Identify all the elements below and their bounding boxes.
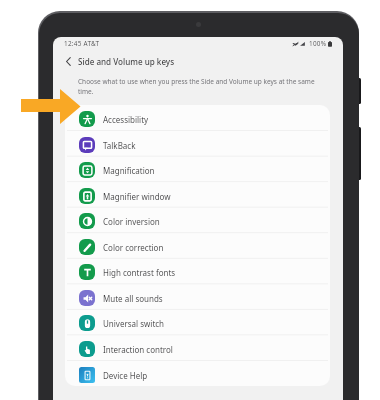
staticText: Interaction control — [103, 344, 173, 355]
staticText: Universal switch — [103, 318, 165, 329]
staticText: 100% — [309, 39, 327, 48]
button[interactable]: TalkBack — [65, 134, 330, 156]
staticText: Choose what to use when you press the Si… — [78, 77, 315, 96]
staticText: Color inversion — [103, 216, 160, 227]
button[interactable]: Magnifier window — [65, 185, 330, 207]
button[interactable]: Interaction control — [65, 338, 330, 360]
button[interactable]: Color correction — [65, 236, 330, 258]
staticText: Mute all sounds — [103, 293, 163, 304]
staticText: High contrast fonts — [103, 267, 176, 278]
staticText: 12:45 AT&T — [64, 39, 100, 48]
button[interactable]: Universal switch — [65, 312, 330, 334]
button[interactable]: High contrast fonts — [65, 261, 330, 283]
button[interactable]: Accessibility — [65, 108, 330, 130]
button[interactable]: Color inversion — [65, 210, 330, 232]
button[interactable]: Device Help — [65, 364, 330, 386]
button[interactable]: Magnification — [65, 159, 330, 181]
staticText: Magnification — [103, 165, 155, 176]
staticText: TalkBack — [103, 140, 136, 151]
staticText: Magnifier window — [103, 191, 171, 202]
button[interactable]: Back — [61, 54, 75, 68]
button[interactable]: Mute all sounds — [65, 287, 330, 309]
staticText: Accessibility — [103, 114, 149, 125]
staticText: Side and Volume up keys — [78, 56, 175, 67]
staticText: Color correction — [103, 242, 164, 253]
staticText: Device Help — [103, 370, 148, 381]
